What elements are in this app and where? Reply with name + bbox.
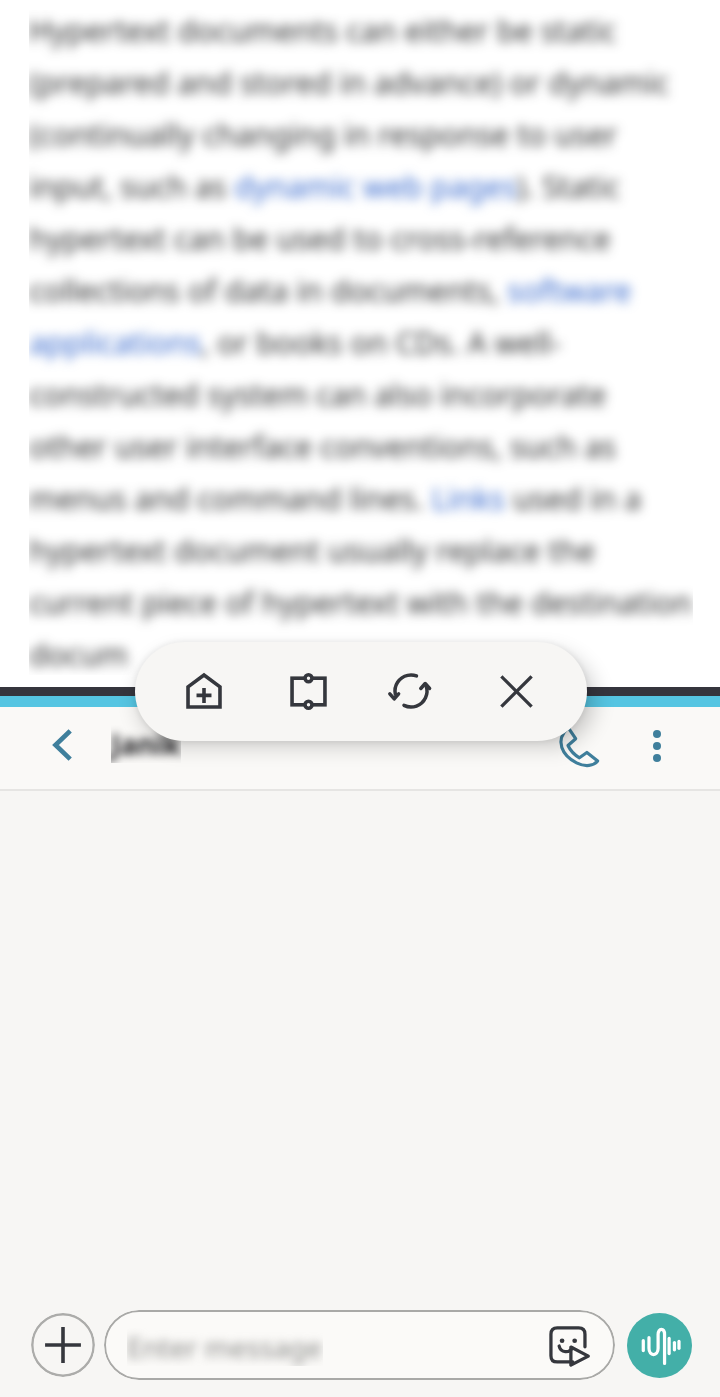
button[interactable]: Add to home [179, 666, 229, 716]
button[interactable]: Enter message [104, 1310, 615, 1380]
button[interactable]: Voice message [627, 1313, 692, 1378]
staticText: Hypertext documents can either be static… [29, 10, 693, 675]
button[interactable]: Close [491, 666, 541, 716]
button[interactable]: Call [534, 707, 622, 789]
staticText: Janik [111, 725, 181, 763]
button[interactable]: Refresh [386, 666, 436, 716]
button[interactable]: Stickers [545, 1322, 593, 1370]
staticText: Enter message [127, 1328, 323, 1366]
button[interactable]: More options [622, 707, 692, 789]
button[interactable]: Back [0, 707, 124, 789]
button[interactable]: Add attachment [31, 1313, 95, 1377]
button[interactable]: Resize [283, 666, 333, 716]
